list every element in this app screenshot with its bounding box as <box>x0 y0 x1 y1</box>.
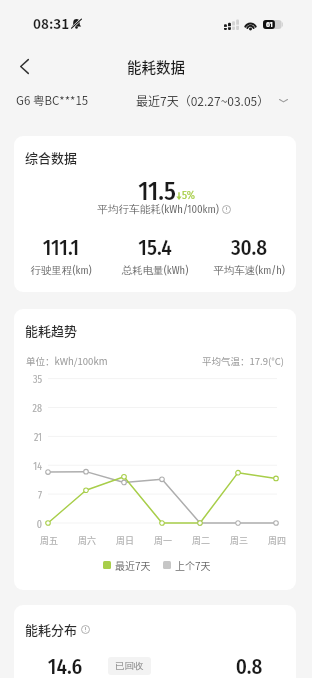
staticText: 14 <box>14 461 42 473</box>
staticText: 21 <box>14 432 42 444</box>
staticText: 最近7天 <box>115 558 151 572</box>
button[interactable]: G6 粤BC***15 <box>16 92 89 109</box>
staticText: 14.6 <box>25 654 105 678</box>
staticText: 35 <box>14 374 42 386</box>
staticText: 上个7天 <box>175 558 211 572</box>
staticText: 15.4 <box>108 235 202 260</box>
staticText: 已回收 <box>115 660 144 672</box>
button[interactable]: 最近7天（02.27~03.05） <box>136 92 288 109</box>
staticText: 行驶里程(km) <box>14 264 108 277</box>
staticText: 30.8 <box>202 235 296 260</box>
staticText: 5% <box>182 189 196 202</box>
staticText: 111.1 <box>14 235 108 260</box>
staticText: 7 <box>14 490 42 502</box>
staticText: 平均车速(km/h) <box>202 264 296 277</box>
staticText: 平均气温：17.9(°C) <box>14 354 284 368</box>
staticText: 能耗分布 <box>25 620 78 639</box>
staticText: 周一 <box>143 534 183 547</box>
staticText: 总耗电量(kWh) <box>108 264 202 277</box>
staticText: 单位：kWh/100km <box>26 354 108 368</box>
staticText: G6 粤BC***15 <box>16 92 89 109</box>
staticText: 0.8 <box>209 654 289 678</box>
staticText: 周日 <box>105 534 145 547</box>
staticText: 11.5 <box>56 177 176 207</box>
staticText: 平均行车能耗(kWh/100km) <box>97 203 219 216</box>
staticText: 综合数据 <box>25 148 78 167</box>
staticText: 能耗趋势 <box>25 321 78 340</box>
staticText: 周四 <box>257 534 296 547</box>
staticText: 08:31 <box>33 13 70 33</box>
staticText: 最近7天（02.27~03.05） <box>136 92 270 109</box>
staticText: 周六 <box>67 534 107 547</box>
button[interactable]: Back <box>8 50 40 82</box>
staticText: 28 <box>14 403 42 415</box>
staticText: 周二 <box>181 534 221 547</box>
staticText: 能耗数据 <box>127 56 185 77</box>
staticText: 0 <box>14 519 42 531</box>
staticText: 周三 <box>219 534 259 547</box>
staticText: 61 <box>266 20 273 29</box>
staticText: 周五 <box>29 534 69 547</box>
